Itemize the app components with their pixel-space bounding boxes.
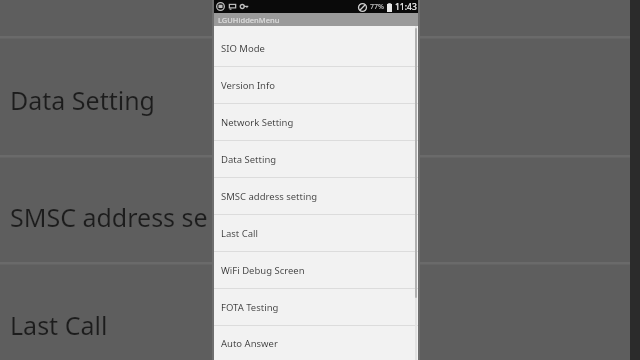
other: VPN key <box>240 2 249 11</box>
staticText: 77% <box>370 2 384 12</box>
button[interactable]: WiFi Debug Screen <box>212 252 420 288</box>
other: App notification <box>216 2 225 11</box>
staticText: Last Call <box>10 308 108 342</box>
staticText: Version Info <box>221 79 275 92</box>
staticText: Last Call <box>221 227 258 240</box>
staticText: Network Setting <box>221 116 294 129</box>
button[interactable]: SIO Mode <box>212 30 420 66</box>
button[interactable]: FOTA Testing <box>212 289 420 325</box>
button[interactable]: Data Setting <box>212 141 420 177</box>
button[interactable]: Network Setting <box>212 104 420 140</box>
staticText: Data Setting <box>221 153 277 166</box>
button[interactable]: SMSC address setting <box>212 178 420 214</box>
staticText: SMSC address se <box>10 200 208 234</box>
other: Silent mode <box>358 3 367 12</box>
staticText: FOTA Testing <box>221 301 279 314</box>
staticText: SMSC address setting <box>221 190 318 203</box>
staticText: 11:43 <box>395 1 417 13</box>
staticText: SIO Mode <box>221 42 265 55</box>
button[interactable]: Auto Answer <box>212 326 420 360</box>
staticText: WiFi Debug Screen <box>221 264 305 277</box>
button[interactable]: Version Info <box>212 67 420 103</box>
staticText: Auto Answer <box>221 337 278 350</box>
staticText: Data Setting <box>10 83 155 117</box>
button[interactable]: LGUHiddenMenu <box>212 13 420 26</box>
button[interactable]: Last Call <box>212 215 420 251</box>
staticText: LGUHiddenMenu <box>218 15 280 25</box>
other: Message <box>228 2 237 11</box>
